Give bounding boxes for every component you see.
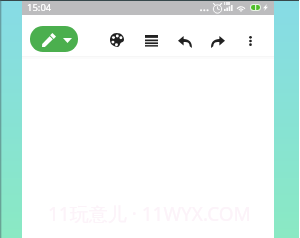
staticText: 15:04	[27, 1, 52, 14]
button[interactable]: Redo	[205, 29, 231, 55]
button[interactable]: Pen tool	[30, 26, 78, 52]
button[interactable]: Palette	[104, 27, 130, 53]
button[interactable]: More options	[237, 28, 263, 54]
button[interactable]: List	[138, 27, 164, 53]
button[interactable]: Undo	[172, 29, 198, 55]
staticText: 11玩意儿 · 11WYX.COM	[48, 201, 251, 227]
